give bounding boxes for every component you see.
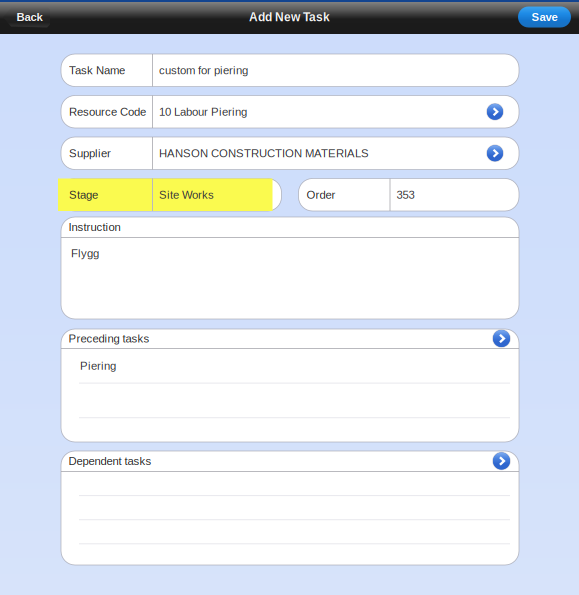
button[interactable]: Order — [298, 178, 519, 211]
staticText: Back — [16, 11, 42, 23]
staticText: Order — [306, 188, 335, 201]
button[interactable]: Piering — [61, 349, 519, 383]
staticText: 10 Labour Piering — [159, 105, 247, 118]
staticText: Instruction — [68, 221, 120, 233]
staticText: Preceding tasks — [68, 332, 149, 345]
staticText: Site Works — [159, 188, 214, 201]
button[interactable]: Task Name — [61, 54, 519, 86]
staticText: Add New Task — [249, 10, 330, 24]
staticText: Resource Code — [69, 105, 146, 118]
staticText: Stage — [69, 188, 98, 201]
staticText: custom for piering — [159, 64, 248, 77]
button[interactable]: Stage — [61, 178, 281, 211]
staticText: Stage — [69, 188, 98, 201]
staticText: Dependent tasks — [68, 455, 151, 467]
staticText: Supplier — [69, 147, 111, 160]
staticText: Task Name — [69, 64, 125, 77]
staticText: Site Works — [159, 188, 214, 201]
button[interactable]: Preceding tasks — [61, 329, 519, 348]
button[interactable]: Supplier — [61, 137, 519, 169]
button[interactable]: Instruction — [61, 217, 519, 237]
staticText: HANSON CONSTRUCTION MATERIALS — [159, 147, 369, 160]
staticText: Piering — [80, 359, 116, 372]
staticText: 353 — [396, 188, 414, 201]
button[interactable]: Back — [3, 6, 50, 27]
button[interactable]: Save — [518, 6, 571, 27]
staticText: Save — [531, 11, 557, 23]
button[interactable]: Resource Code — [61, 95, 519, 128]
button[interactable]: Dependent tasks — [61, 451, 519, 471]
staticText: Flygg — [71, 247, 99, 260]
